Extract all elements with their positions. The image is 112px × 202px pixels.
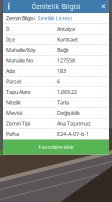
staticText: Favorilere ekle bbox=[38, 143, 73, 151]
staticText: Ada bbox=[6, 67, 15, 75]
staticText: Değişiklik bbox=[57, 109, 80, 117]
staticText: E24-A-07-b-1 bbox=[57, 130, 89, 138]
staticText: Pafta bbox=[6, 130, 19, 138]
staticText: Tarla bbox=[57, 99, 69, 106]
staticText: Zemin Tipi bbox=[6, 120, 30, 127]
staticText: Tapu Alanı bbox=[6, 88, 30, 96]
staticText: 183 bbox=[57, 67, 66, 75]
button[interactable]: Info bbox=[3, 0, 14, 13]
staticText: Kurtkaet bbox=[57, 36, 78, 43]
staticText: İlçe bbox=[6, 36, 15, 43]
staticText: İl bbox=[6, 25, 9, 33]
button[interactable]: Zemin Bilgisi bbox=[6, 14, 35, 23]
staticText: 6 bbox=[57, 78, 60, 85]
staticText: Antalya bbox=[57, 25, 75, 33]
staticText: Bağlı bbox=[57, 46, 68, 54]
staticText: ✕ bbox=[100, 3, 106, 10]
staticText: Mevkii bbox=[6, 109, 22, 117]
staticText: Zemin Bilgisi bbox=[6, 15, 35, 22]
staticText: 1,069.22 bbox=[57, 88, 77, 96]
staticText: Parsel bbox=[6, 78, 21, 85]
button[interactable]: Close bbox=[98, 0, 109, 13]
staticText: Öznitelik Bilgisi bbox=[31, 2, 80, 11]
button[interactable]: Favorilere ekle bbox=[3, 139, 109, 154]
staticText: Mahalle No bbox=[6, 57, 33, 64]
staticText: i bbox=[7, 1, 9, 12]
staticText: Ana Taşınmaz bbox=[57, 120, 91, 127]
staticText: Mahalle/Köy bbox=[6, 46, 36, 54]
staticText: 127558 bbox=[57, 57, 75, 64]
staticText: Sınırlılık Listesi bbox=[37, 15, 71, 22]
staticText: Nitelik bbox=[6, 99, 21, 106]
button[interactable]: Sınırlılık Listesi bbox=[37, 14, 71, 23]
